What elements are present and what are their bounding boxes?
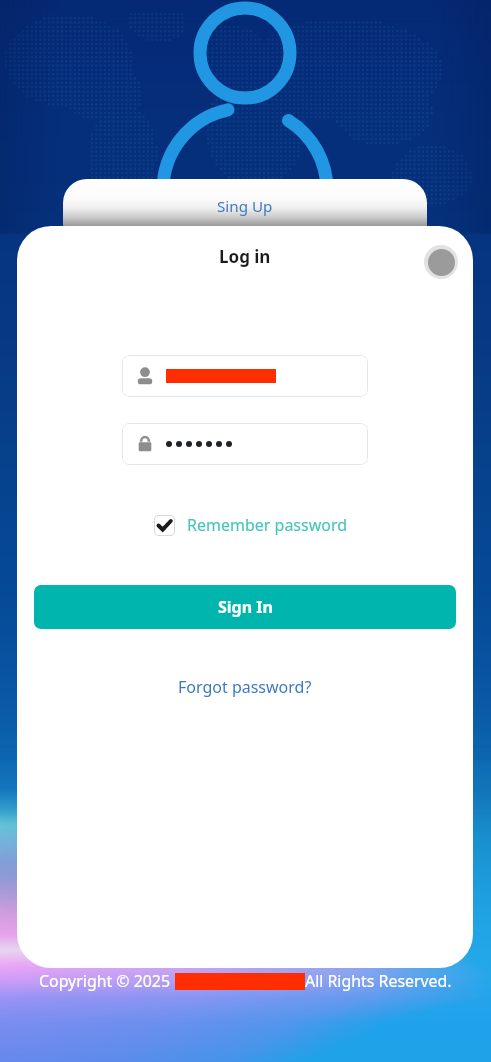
- staticText: Sing Up: [217, 196, 273, 217]
- button[interactable]: Remember password: [154, 514, 348, 536]
- button[interactable]: Sign In: [34, 585, 456, 629]
- staticText: All Rights Reserved.: [305, 970, 452, 992]
- staticText: Forgot password?: [178, 676, 312, 698]
- staticText: Copyright © 2025: [39, 970, 175, 992]
- button[interactable]: Profile avatar: [424, 245, 458, 279]
- button[interactable]: Forgot password?: [178, 676, 312, 698]
- button[interactable]: [136, 423, 368, 465]
- staticText: Log in: [219, 245, 271, 268]
- staticText: Sign In: [218, 596, 273, 618]
- button[interactable]: [136, 355, 368, 397]
- staticText: Remember password: [187, 514, 348, 536]
- button[interactable]: Sing Up: [63, 179, 427, 227]
